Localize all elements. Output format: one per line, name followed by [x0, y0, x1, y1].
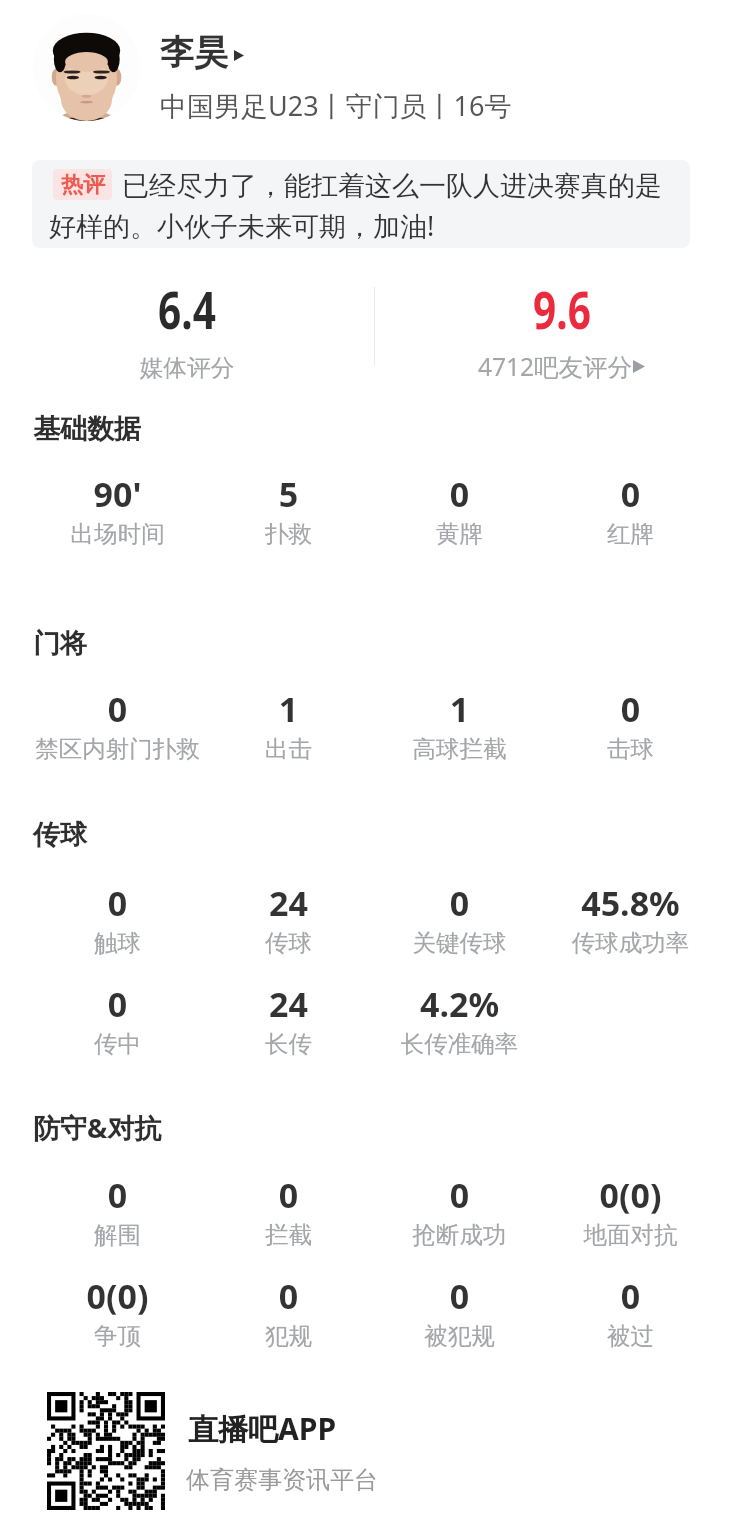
staticText: 传球成功率 — [545, 928, 716, 958]
button[interactable]: 0 — [374, 1269, 545, 1347]
button[interactable]: 0 — [32, 876, 203, 954]
staticText: 45.8% — [545, 880, 716, 926]
staticText: 0 — [374, 1273, 545, 1319]
staticText: 犯规 — [203, 1321, 374, 1351]
staticText: 防守&对抗 — [33, 1109, 162, 1146]
button[interactable]: Download 直播吧 app QR code — [47, 1392, 165, 1510]
staticText: 出场时间 — [32, 519, 203, 549]
button[interactable]: 李昊 — [160, 30, 238, 78]
staticText: 传球 — [33, 818, 87, 852]
staticText: 李昊 — [160, 31, 228, 74]
staticText: 0 — [374, 1172, 545, 1218]
staticText: 0 — [32, 686, 203, 732]
staticText: 扑救 — [203, 519, 374, 549]
staticText: 4.2% — [374, 981, 545, 1027]
button[interactable]: 4.2% — [374, 977, 545, 1055]
staticText: 5 — [203, 471, 374, 517]
staticText: 传中 — [32, 1029, 203, 1059]
button[interactable]: 0 — [545, 682, 716, 760]
staticText: 长传 — [203, 1029, 374, 1059]
staticText: 出击 — [203, 734, 374, 764]
staticText: 黄牌 — [374, 519, 545, 549]
button[interactable]: 0 — [203, 1269, 374, 1347]
staticText: 24 — [203, 880, 374, 926]
staticText: 门将 — [33, 627, 87, 661]
staticText: 0 — [545, 686, 716, 732]
button[interactable]: 0 — [545, 1269, 716, 1347]
staticText: 0 — [545, 471, 716, 517]
staticText: 中国男足U23丨守门员丨16号 — [160, 87, 512, 124]
staticText: [热评]已经尽力了，能扛着这么一队人进决赛真的是好样的。小伙子未来可期，加油! — [49, 169, 673, 244]
button[interactable]: 0(0) — [32, 1269, 203, 1347]
staticText: 0 — [545, 1273, 716, 1319]
button[interactable]: 0 — [32, 682, 203, 760]
staticText: 触球 — [32, 928, 203, 958]
button[interactable]: 9.6 — [395, 280, 729, 380]
staticText: 体育赛事资讯平台 — [186, 1465, 378, 1495]
button[interactable]: 24 — [203, 977, 374, 1055]
staticText: 0 — [374, 471, 545, 517]
button[interactable]: 6.4 — [20, 280, 354, 380]
staticText: 击球 — [545, 734, 716, 764]
staticText: 0 — [32, 981, 203, 1027]
button[interactable]: 0 — [32, 1168, 203, 1246]
button[interactable]: 0 — [374, 876, 545, 954]
staticText: 1 — [203, 686, 374, 732]
staticText: 0 — [203, 1273, 374, 1319]
button[interactable]: 0 — [374, 467, 545, 545]
button[interactable]: 直播吧APP — [186, 1405, 406, 1501]
staticText: 禁区内射门扑救 — [32, 734, 203, 764]
staticText: 24 — [203, 981, 374, 1027]
staticText: 拦截 — [203, 1220, 374, 1250]
button[interactable]: 90' — [32, 467, 203, 545]
button[interactable]: 1 — [374, 682, 545, 760]
staticText: 9.6 — [432, 273, 692, 344]
staticText: 抢断成功 — [374, 1220, 545, 1250]
staticText: 6.4 — [57, 273, 317, 344]
staticText: 媒体评分 — [20, 353, 354, 383]
button[interactable]: 0 — [32, 977, 203, 1055]
staticText: 高球拦截 — [374, 734, 545, 764]
button[interactable]: 0 — [374, 1168, 545, 1246]
button[interactable]: Player photo — [33, 14, 140, 121]
button[interactable]: 0(0) — [545, 1168, 716, 1246]
staticText: 1 — [374, 686, 545, 732]
button[interactable]: 45.8% — [545, 876, 716, 954]
staticText: 基础数据 — [33, 412, 141, 446]
staticText: 被过 — [545, 1321, 716, 1351]
staticText: 90' — [32, 471, 203, 517]
staticText: 关键传球 — [374, 928, 545, 958]
button[interactable]: 5 — [203, 467, 374, 545]
staticText: 长传准确率 — [374, 1029, 545, 1059]
staticText: 0(0) — [545, 1172, 716, 1218]
staticText: 0(0) — [32, 1273, 203, 1319]
staticText: 0 — [32, 1172, 203, 1218]
button[interactable]: 0 — [545, 467, 716, 545]
staticText: 0 — [203, 1172, 374, 1218]
staticText: 红牌 — [545, 519, 716, 549]
button[interactable]: 0 — [203, 1168, 374, 1246]
staticText: 传球 — [203, 928, 374, 958]
staticText: 地面对抗 — [545, 1220, 716, 1250]
staticText: 争顶 — [32, 1321, 203, 1351]
staticText: 被犯规 — [374, 1321, 545, 1351]
button[interactable]: [热评]已经尽力了，能扛着这么一队人进决赛真的是好样的。小伙子未来可期，加油! — [32, 160, 690, 248]
button[interactable]: 1 — [203, 682, 374, 760]
staticText: 热评 — [61, 171, 105, 199]
staticText: 0 — [32, 880, 203, 926]
staticText: 解围 — [32, 1220, 203, 1250]
button[interactable]: 24 — [203, 876, 374, 954]
staticText: 0 — [374, 880, 545, 926]
staticText: 直播吧APP — [188, 1408, 337, 1449]
staticText: 4712吧友评分 — [388, 350, 722, 383]
